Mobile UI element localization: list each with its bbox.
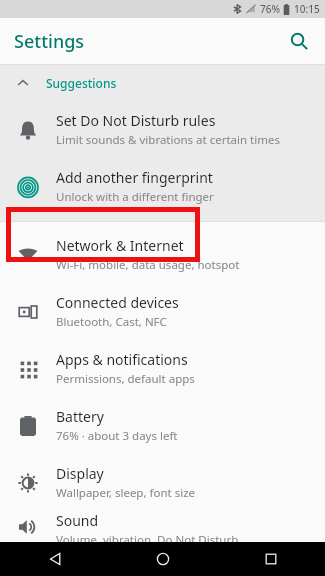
staticText: Volume, vibration, Do Not Disturb: [56, 532, 239, 542]
staticText: Limit sounds & vibrations at certain tim…: [56, 132, 280, 148]
staticText: Settings: [14, 29, 85, 54]
staticText: Unlock with a different finger: [56, 189, 214, 205]
button[interactable]: Back: [0, 542, 109, 576]
staticText: Battery: [56, 407, 104, 426]
button[interactable]: Connected devices: [0, 283, 325, 340]
button[interactable]: Set Do Not Disturb rules: [0, 101, 325, 158]
staticText: 76%: [260, 2, 280, 16]
staticText: Add another fingerprint: [56, 168, 213, 187]
button[interactable]: Sound: [0, 511, 325, 542]
button[interactable]: Apps & notifications: [0, 340, 325, 397]
staticText: 76% · about 3 days left: [56, 428, 178, 444]
button[interactable]: Add another fingerprint: [0, 158, 325, 215]
button[interactable]: Search: [281, 23, 317, 59]
button[interactable]: Battery: [0, 397, 325, 454]
staticText: Sound: [56, 511, 99, 530]
button[interactable]: Network & Internet: [0, 226, 325, 283]
staticText: 10:15: [294, 2, 320, 16]
button[interactable]: Recent apps: [217, 542, 325, 576]
button[interactable]: Home: [109, 542, 217, 576]
staticText: Apps & notifications: [56, 350, 188, 369]
staticText: Connected devices: [56, 293, 179, 312]
staticText: Wi-Fi, mobile, data usage, hotspot: [56, 257, 240, 273]
staticText: Display: [56, 464, 104, 483]
staticText: Bluetooth, Cast, NFC: [56, 314, 167, 330]
staticText: Wallpaper, sleep, font size: [56, 485, 196, 501]
staticText: Network & Internet: [56, 236, 184, 255]
staticText: Permissions, default apps: [56, 371, 195, 387]
staticText: Set Do Not Disturb rules: [56, 111, 216, 130]
button[interactable]: Display: [0, 454, 325, 511]
staticText: Suggestions: [46, 75, 117, 91]
button[interactable]: Suggestions: [0, 65, 325, 101]
